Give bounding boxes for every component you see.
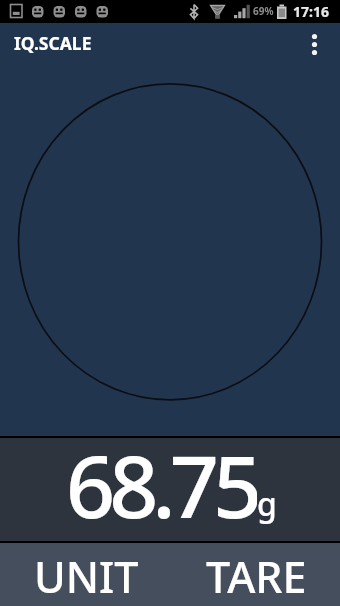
staticText: g	[257, 482, 277, 526]
staticText: 68.75	[66, 426, 257, 529]
staticText: 17:16	[293, 2, 329, 21]
button[interactable]: More options	[299, 23, 340, 61]
button[interactable]: UNIT	[0, 543, 170, 606]
staticText: UNIT	[34, 547, 139, 606]
staticText: 69%	[253, 4, 274, 18]
button[interactable]: TARE	[170, 543, 340, 606]
staticText: IQ.SCALE	[14, 31, 92, 55]
staticText: TARE	[206, 547, 307, 606]
